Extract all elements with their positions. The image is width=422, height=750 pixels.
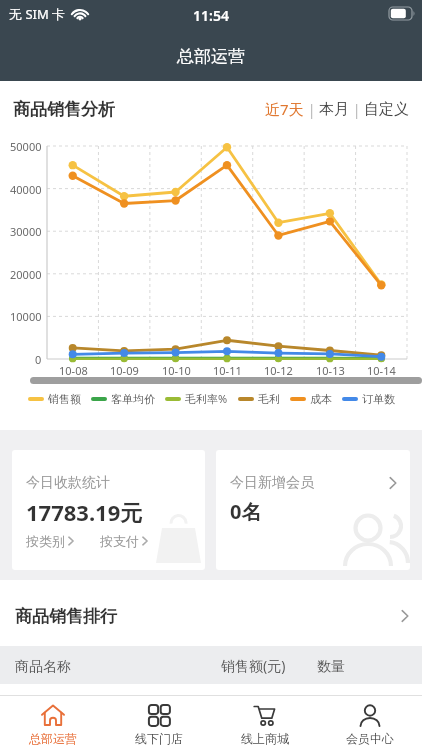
- staticText: 订单数: [362, 392, 395, 406]
- staticText: 无 SIM 卡: [9, 5, 66, 23]
- staticText: 50000: [10, 139, 42, 154]
- staticText: 20000: [10, 267, 42, 282]
- staticText: 按类别: [26, 533, 65, 549]
- staticText: 0名: [230, 498, 262, 525]
- staticText: 总部运营: [29, 731, 77, 746]
- staticText: 成本: [310, 392, 332, 406]
- staticText: 线下门店: [135, 731, 183, 746]
- staticText: 毛利率%: [185, 391, 228, 406]
- button[interactable]: 会员中心: [318, 696, 422, 750]
- staticText: 销售额(元): [221, 656, 286, 675]
- staticText: ​数量: [317, 656, 345, 675]
- staticText: 10-08: [59, 363, 88, 378]
- staticText: 商品销售分析: [13, 99, 115, 120]
- staticText: 0: [35, 352, 42, 367]
- staticText: 线上商城: [241, 731, 289, 746]
- button[interactable]: 按支付: [100, 533, 148, 549]
- staticText: 毛利: [258, 392, 280, 406]
- staticText: 销售额: [48, 392, 81, 406]
- staticText: 10-11: [213, 363, 242, 378]
- staticText: 近7天: [265, 99, 304, 119]
- staticText: 10-14: [367, 363, 396, 378]
- staticText: 今日收款统计: [26, 474, 110, 492]
- button[interactable]: 商品销售排行: [0, 580, 422, 646]
- staticText: ​商品名称: [15, 656, 71, 675]
- staticText: 自定义: [364, 100, 409, 119]
- staticText: 今日新增会员: [230, 474, 314, 492]
- button[interactable]: 本月: [319, 100, 349, 119]
- button[interactable]: 今日收款统计: [12, 450, 205, 570]
- staticText: 客单均价: [111, 392, 155, 406]
- staticText: 10-09: [110, 363, 139, 378]
- button[interactable]: 近7天: [265, 99, 304, 119]
- button[interactable]: 今日新增会员: [216, 450, 410, 570]
- button[interactable]: 总部运营: [0, 696, 106, 750]
- staticText: 11:54: [193, 6, 229, 25]
- staticText: |: [349, 100, 364, 119]
- staticText: 会员中心: [346, 731, 394, 746]
- staticText: 本月: [319, 100, 349, 119]
- staticText: 总部运营: [177, 46, 245, 67]
- staticText: 40000: [10, 182, 42, 197]
- button[interactable]: 线上商城: [212, 696, 318, 750]
- staticText: 10000: [10, 309, 42, 324]
- staticText: 10-12: [264, 363, 293, 378]
- staticText: 17783.19元: [26, 497, 143, 527]
- button[interactable]: 自定义: [364, 100, 409, 119]
- staticText: 30000: [10, 224, 42, 239]
- button[interactable]: 线下门店: [106, 696, 212, 750]
- staticText: 商品销售排行: [15, 606, 117, 627]
- button[interactable]: 按类别: [26, 533, 74, 549]
- staticText: |: [304, 100, 319, 119]
- staticText: 10-13: [316, 363, 345, 378]
- staticText: 10-10: [162, 363, 191, 378]
- staticText: 按支付: [100, 533, 139, 549]
